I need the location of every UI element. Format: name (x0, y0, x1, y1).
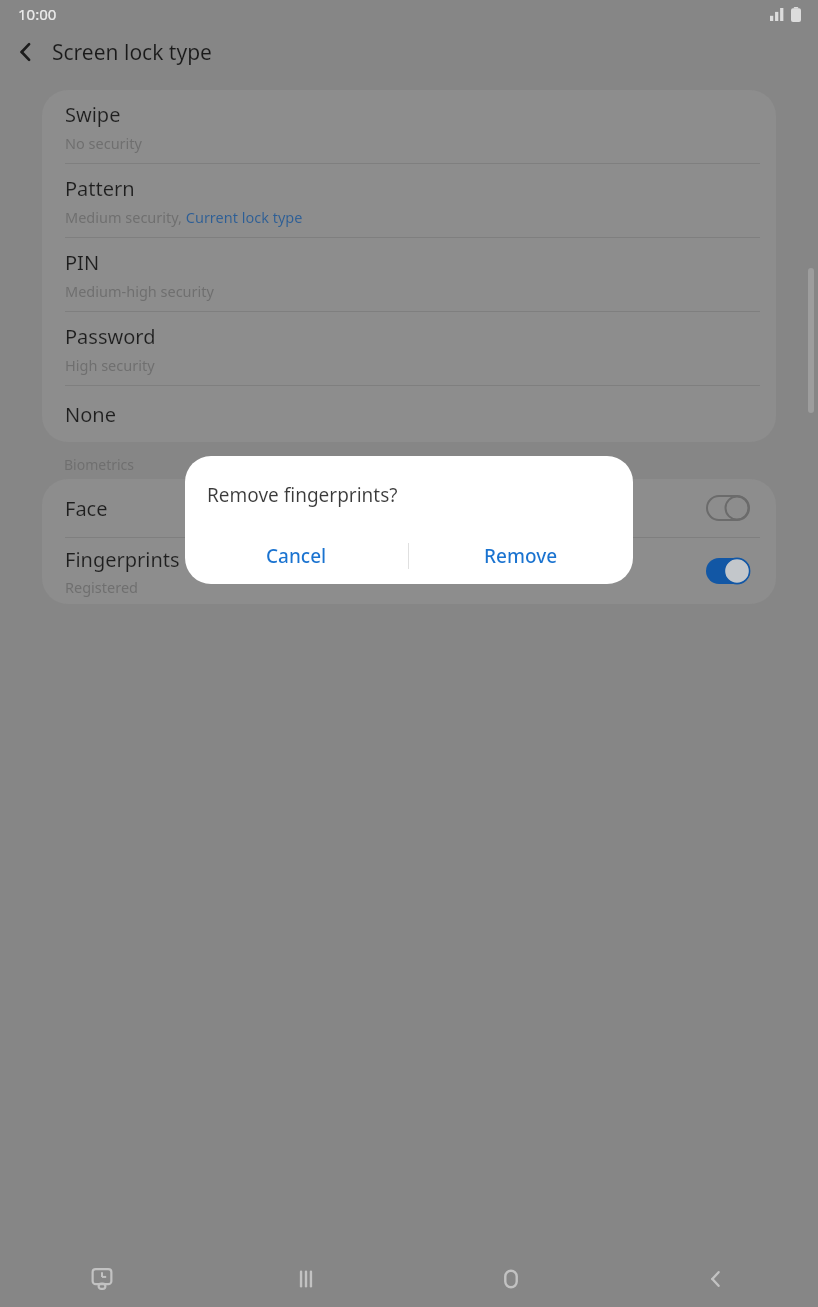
staticText: Biometrics (64, 455, 135, 474)
button[interactable]: Swipe (42, 90, 776, 164)
staticText: None (65, 401, 116, 428)
staticText: Remove (484, 543, 558, 569)
button[interactable]: Face (42, 479, 776, 538)
button[interactable]: Home (408, 1250, 613, 1307)
staticText: Medium security, Current lock type (65, 207, 303, 227)
button[interactable]: Password (42, 312, 776, 386)
button[interactable]: None (42, 386, 776, 442)
staticText: Remove fingerprints? (207, 482, 398, 508)
staticText: Pattern (65, 175, 135, 202)
staticText: 10:00 (18, 4, 57, 24)
staticText: Swipe (65, 101, 121, 128)
button[interactable]: Keyboard (0, 1250, 204, 1307)
button[interactable]: Pattern (42, 164, 776, 238)
button[interactable]: Cancel (185, 528, 408, 584)
button[interactable]: Remove (409, 528, 633, 584)
staticText: Screen lock type (52, 38, 212, 67)
button[interactable]: Navigate up (0, 28, 52, 76)
button[interactable]: Fingerprints (42, 538, 776, 604)
button[interactable]: Disabled (706, 495, 750, 521)
staticText: No security (65, 133, 142, 153)
button[interactable]: Back (613, 1250, 818, 1307)
button[interactable]: Recent apps (204, 1250, 408, 1307)
staticText: Face (65, 495, 108, 522)
button[interactable]: Enabled (706, 558, 750, 584)
staticText: Password (65, 323, 156, 350)
staticText: Fingerprints (65, 546, 180, 573)
staticText: Registered (65, 577, 139, 597)
button[interactable]: PIN (42, 238, 776, 312)
staticText: Cancel (266, 543, 327, 569)
staticText: Medium-high security (65, 281, 214, 301)
staticText: PIN (65, 249, 100, 276)
staticText: High security (65, 355, 155, 375)
